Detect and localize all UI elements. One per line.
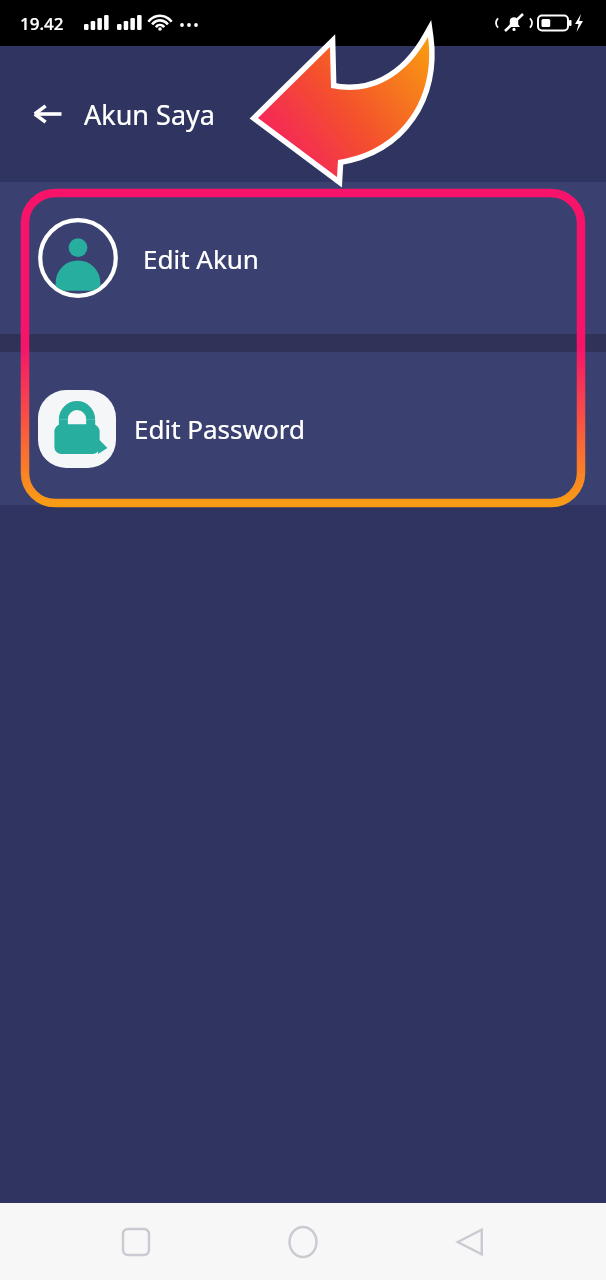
staticText: 19.42 bbox=[20, 12, 64, 35]
staticText: Akun Saya bbox=[84, 96, 215, 133]
button[interactable]: Back bbox=[439, 1211, 501, 1273]
button[interactable]: Recent apps bbox=[105, 1211, 167, 1273]
button[interactable]: Home bbox=[272, 1211, 334, 1273]
staticText: Edit Password bbox=[134, 411, 305, 446]
staticText: Edit Akun bbox=[143, 241, 259, 276]
button[interactable]: Edit Akun bbox=[0, 182, 606, 334]
button[interactable]: Back bbox=[22, 88, 74, 140]
button[interactable]: Edit Password bbox=[0, 352, 606, 505]
